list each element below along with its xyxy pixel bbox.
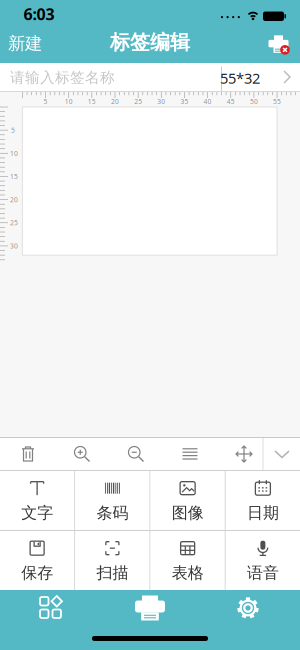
staticText: 日期: [247, 503, 279, 523]
staticText: 6:03: [23, 3, 54, 25]
button[interactable]: 打印: [268, 35, 290, 55]
staticText: 5: [43, 97, 47, 106]
button[interactable]: 条码: [75, 471, 149, 530]
button[interactable]: 移动: [234, 444, 254, 464]
staticText: 30: [157, 97, 165, 106]
staticText: 5: [11, 126, 15, 135]
staticText: 10: [10, 149, 18, 158]
staticText: 语音: [247, 563, 279, 583]
button[interactable]: 对齐: [180, 444, 200, 464]
button[interactable]: 放大: [72, 444, 92, 464]
staticText: 25: [10, 218, 18, 227]
button[interactable]: 图像: [150, 471, 225, 530]
staticText: 15: [10, 172, 18, 181]
button[interactable]: 表格: [150, 531, 225, 590]
staticText: 标签编辑: [110, 30, 190, 55]
button[interactable]: 日期: [226, 471, 300, 530]
staticText: 55*32: [220, 68, 260, 88]
staticText: 扫描: [96, 563, 128, 583]
staticText: 10: [65, 97, 73, 106]
button[interactable]: 设置: [235, 595, 261, 621]
staticText: 30: [10, 241, 18, 250]
button[interactable]: 缩小: [126, 444, 146, 464]
button[interactable]: 新建: [0, 22, 42, 65]
staticText: 20: [10, 195, 18, 204]
staticText: 50: [250, 97, 258, 106]
button[interactable]: 语音: [226, 531, 300, 590]
button[interactable]: 文字: [0, 471, 74, 530]
staticText: 55: [273, 97, 281, 106]
button[interactable]: 输入标签名称: [0, 63, 221, 92]
button[interactable]: 打印: [135, 595, 165, 620]
button[interactable]: 保存: [0, 531, 74, 590]
button[interactable]: 模板: [38, 595, 64, 621]
staticText: 15: [88, 97, 96, 106]
button[interactable]: 收起: [272, 444, 292, 464]
button[interactable]: 选择标签尺寸 55*32: [221, 63, 300, 92]
staticText: 保存: [21, 563, 53, 583]
staticText: 45: [227, 97, 235, 106]
button[interactable]: 删除: [18, 444, 38, 464]
staticText: 20: [111, 97, 119, 106]
staticText: 新建: [8, 33, 42, 54]
staticText: 文字: [21, 503, 53, 523]
staticText: 表格: [172, 563, 204, 583]
staticText: 25: [134, 97, 142, 106]
button[interactable]: 扫描: [75, 531, 149, 590]
staticText: 请输入标签名称: [10, 68, 115, 86]
staticText: 图像: [172, 503, 204, 523]
staticText: 35: [180, 97, 188, 106]
staticText: 条码: [96, 503, 128, 523]
staticText: 40: [204, 97, 212, 106]
